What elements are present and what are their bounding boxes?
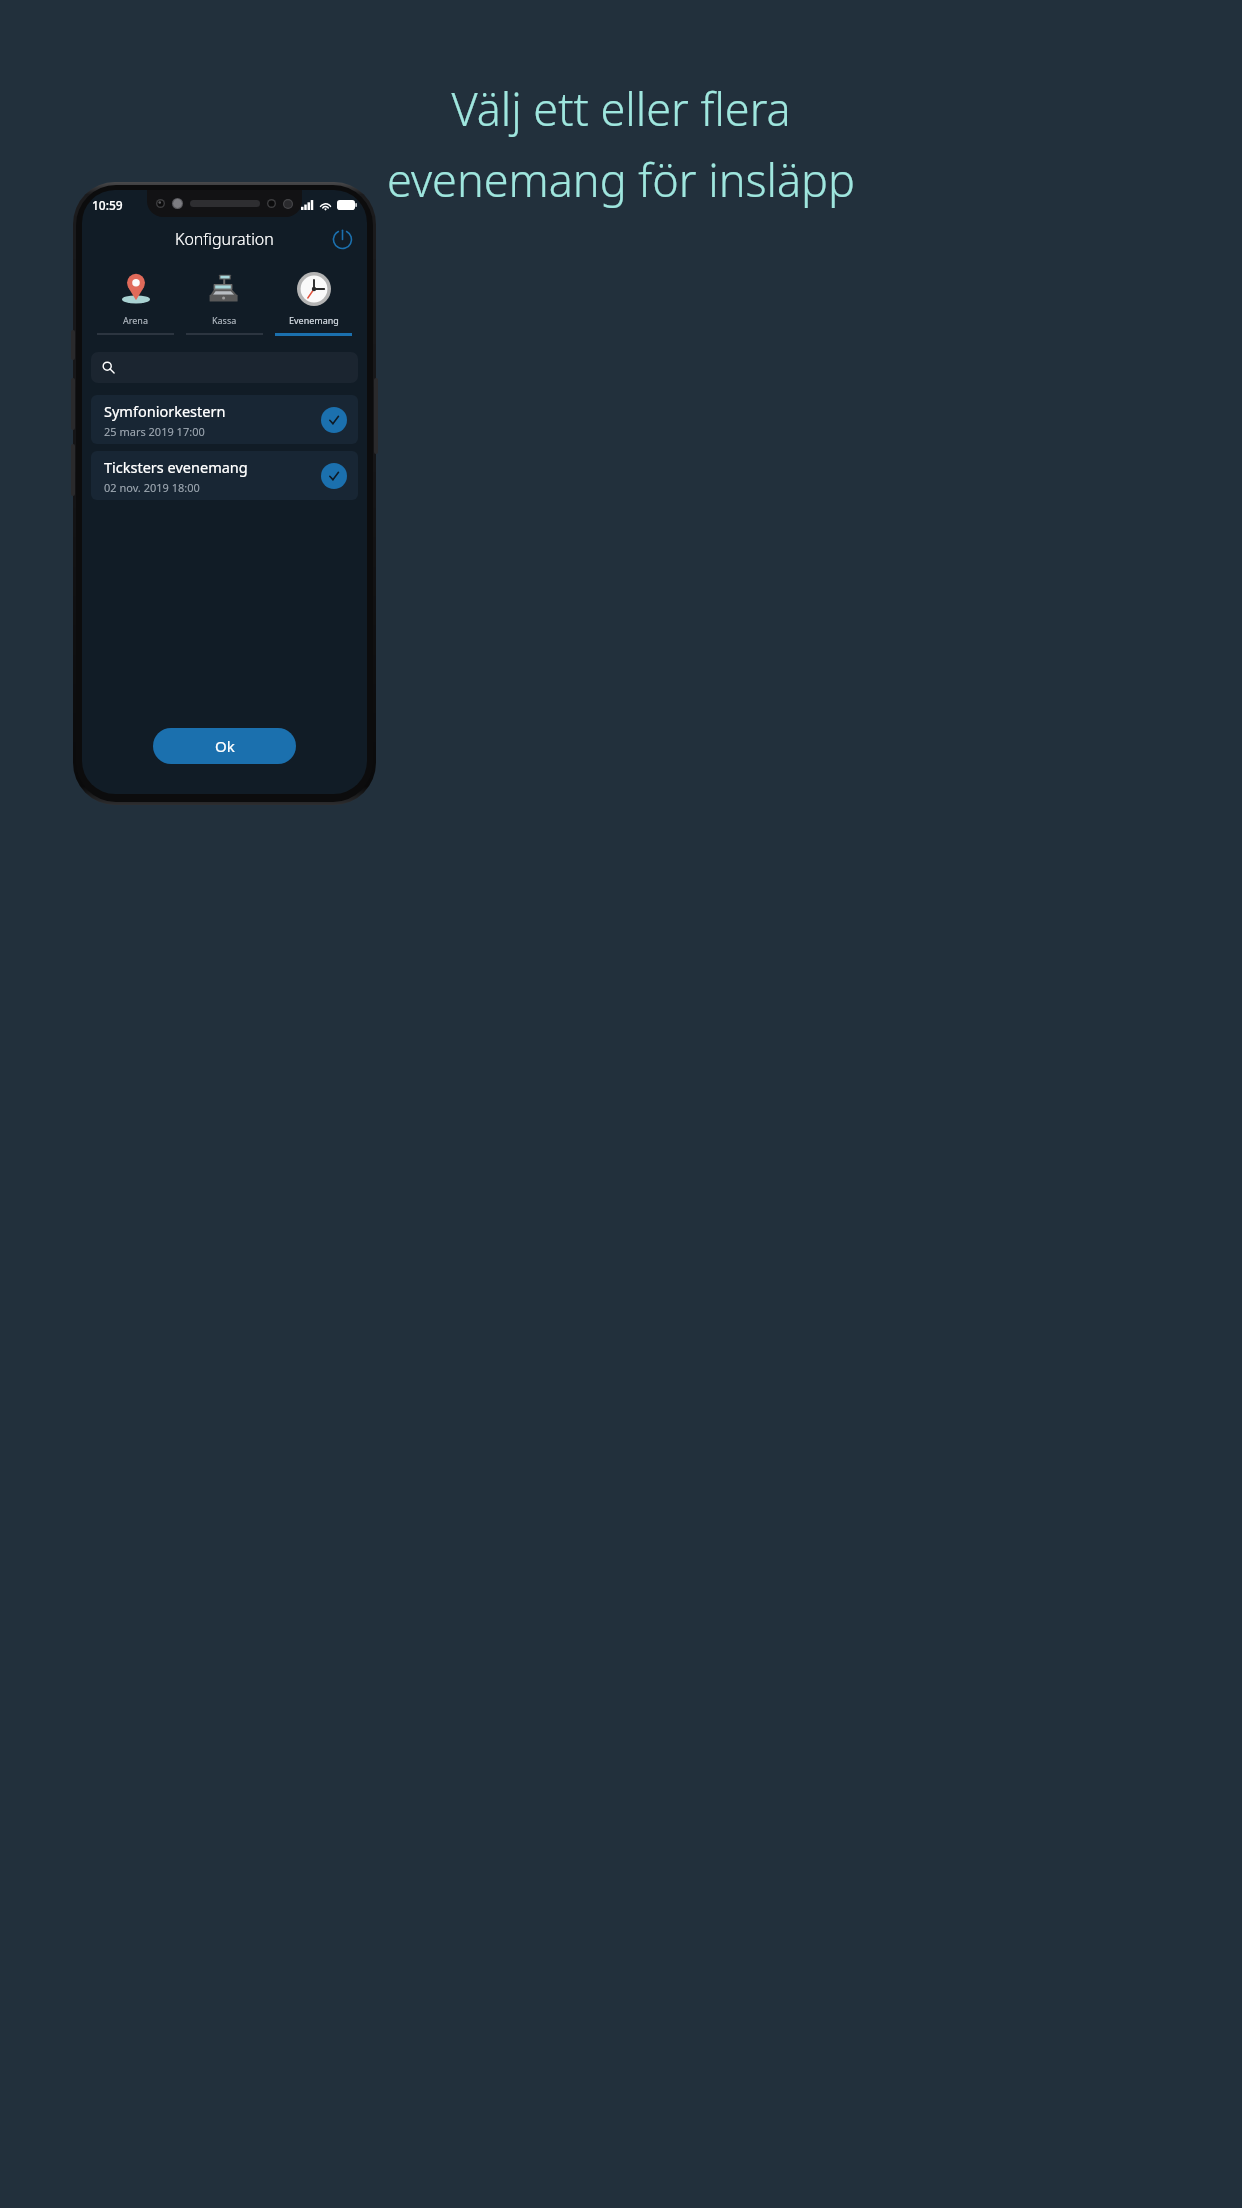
staticText: Ok (215, 736, 235, 756)
staticText: Evenemang (289, 314, 339, 326)
staticText: evenemang för insläpp (387, 149, 855, 210)
button[interactable]: Search (91, 352, 358, 383)
staticText: 25 mars 2019 17:00 (104, 424, 205, 439)
button[interactable]: Arena (91, 262, 180, 335)
button[interactable]: Selected (321, 407, 347, 433)
staticText: Kassa (212, 314, 237, 326)
button[interactable]: Ticksters evenemang (91, 451, 358, 500)
button[interactable]: Kassa (180, 262, 269, 335)
staticText: Symfoniorkestern (104, 401, 226, 421)
staticText: 02 nov. 2019 18:00 (104, 480, 200, 495)
staticText: Välj ett eller flera (451, 78, 791, 139)
staticText: Arena (123, 314, 148, 326)
staticText: Konfiguration (175, 228, 274, 250)
button[interactable]: Symfoniorkestern (91, 395, 358, 444)
button[interactable]: Selected (321, 463, 347, 489)
other: Search (102, 361, 115, 374)
staticText: Ticksters evenemang (104, 457, 248, 477)
staticText: 10:59 (92, 197, 123, 213)
button[interactable]: Evenemang (269, 262, 358, 336)
button[interactable]: Ok (153, 728, 296, 764)
button[interactable]: Power (326, 223, 358, 255)
